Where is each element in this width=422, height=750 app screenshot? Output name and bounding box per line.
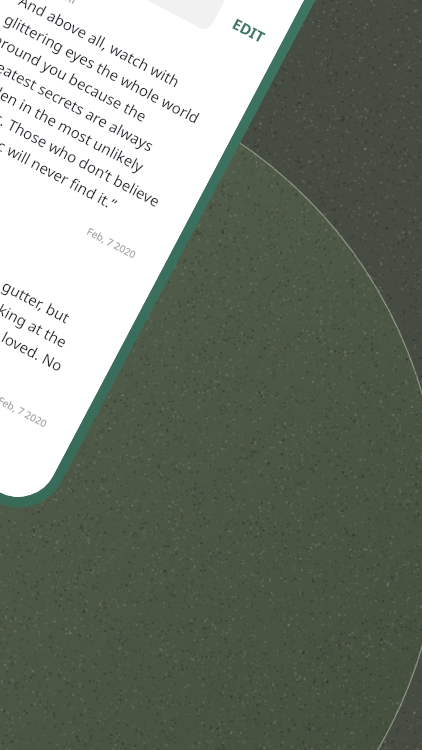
button[interactable]: EDIT (223, 6, 275, 54)
staticText: “We are all in the gutter, but some of u… (0, 218, 100, 402)
button[interactable]: Anonymous (0, 347, 42, 505)
staticText: Feb, 7 2020 (85, 224, 139, 262)
button[interactable]: Rald Dahl (0, 0, 253, 287)
button[interactable]: Oscar Wilde (0, 178, 132, 456)
staticText: EDIT (229, 13, 268, 47)
button[interactable]: Search (29, 0, 228, 32)
staticText: Rald Dahl (24, 0, 80, 7)
staticText: Feb, 7 2020 (0, 393, 50, 431)
staticText: “And above all, watch with glittering ey… (0, 0, 221, 233)
